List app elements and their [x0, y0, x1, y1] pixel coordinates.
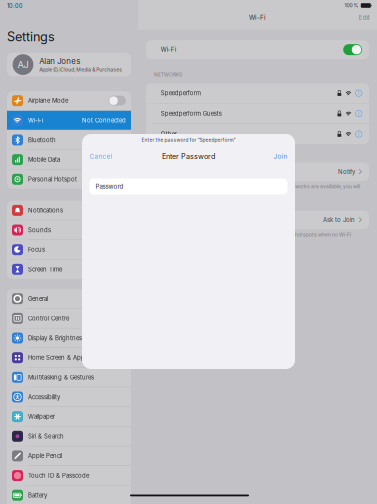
button[interactable]: Accessibility — [7, 387, 131, 406]
staticText: Mobile Data — [28, 156, 60, 163]
staticText: Multitasking & Gestures — [28, 374, 94, 381]
staticText: Known networks will be joined automatica… — [154, 184, 360, 195]
button[interactable]: Sounds — [7, 220, 131, 240]
staticText: Control Centre — [28, 315, 69, 322]
button[interactable]: Touch ID & Passcode — [7, 466, 131, 485]
staticText: Wi-Fi — [28, 117, 43, 124]
staticText: Password — [95, 183, 123, 190]
staticText: Display & Brightness — [28, 334, 85, 342]
button[interactable]: Multitasking & Gestures — [7, 368, 131, 387]
staticText: Airplane Mode — [28, 97, 68, 104]
button[interactable]: Speedperform Guests — [146, 104, 369, 123]
staticText: General — [28, 295, 48, 302]
staticText: Settings — [7, 29, 55, 44]
staticText: Edit — [359, 14, 370, 21]
button[interactable]: Ask to Join Networks — [146, 162, 369, 181]
staticText: Wallpaper — [28, 413, 55, 420]
staticText: Allow this device to automatically disco… — [154, 232, 351, 243]
staticText: Not Connected — [82, 117, 126, 124]
staticText: Speedperform — [161, 89, 201, 97]
staticText: Ask to Join — [323, 216, 355, 223]
button[interactable]: Display & Brightness — [7, 328, 131, 348]
button[interactable]: Siri & Search — [7, 427, 131, 446]
staticText: Wi-Fi — [249, 14, 266, 21]
staticText: Screen Time — [28, 266, 62, 273]
staticText: Wi-Fi — [161, 46, 176, 53]
button[interactable]: Wi-Fi — [7, 111, 131, 130]
button[interactable]: Wallpaper — [7, 407, 131, 426]
button[interactable]: Focus — [7, 240, 131, 259]
button[interactable]: Apple Pencil — [7, 446, 131, 465]
button[interactable]: Other — [146, 124, 369, 144]
button[interactable]: Mobile Data — [7, 150, 131, 169]
staticText: Notifications — [28, 207, 63, 214]
button[interactable]: Control Centre — [7, 309, 131, 328]
staticText: Speedperform Guests — [161, 110, 222, 117]
staticText: 100 % — [345, 2, 359, 8]
staticText: Personal Hotspot — [28, 176, 77, 183]
button[interactable]: Bluetooth — [7, 130, 131, 149]
staticText: Alan Jones — [39, 56, 80, 66]
button[interactable]: Airplane Mode — [7, 91, 131, 110]
staticText: Accessibility — [28, 393, 60, 401]
staticText: Notify — [338, 168, 355, 175]
button[interactable]: Edit — [359, 14, 370, 21]
staticText: i — [358, 110, 359, 117]
staticText: Siri & Search — [28, 433, 64, 440]
staticText: Apple ID, iCloud, Media & Purchases — [39, 67, 122, 73]
staticText: Join — [273, 153, 287, 160]
button[interactable]: Wi-Fi — [343, 44, 362, 55]
staticText: Bluetooth — [28, 136, 56, 144]
button[interactable]: Auto-Join Hotspot — [146, 210, 369, 229]
staticText: Battery — [28, 492, 47, 499]
button[interactable]: Screen Time — [7, 260, 131, 279]
button[interactable]: Speedperform — [146, 83, 369, 103]
staticText: Home Screen & App Library — [28, 354, 105, 361]
staticText: AJ — [17, 59, 28, 70]
staticText: Touch ID & Passcode — [28, 472, 89, 479]
button[interactable]: Personal Hotspot — [7, 170, 131, 189]
staticText: 10:00 — [7, 3, 23, 9]
button[interactable]: AJ — [7, 53, 131, 76]
button[interactable]: Battery — [7, 486, 131, 504]
staticText: i — [358, 131, 359, 137]
button[interactable]: Home Screen & App Library — [7, 348, 131, 367]
staticText: Other — [161, 130, 177, 138]
staticText: NETWORKS — [154, 72, 182, 78]
button[interactable]: Join — [273, 153, 287, 160]
staticText: Apple Pencil — [28, 452, 62, 460]
staticText: i — [358, 90, 359, 96]
button[interactable]: Cancel — [89, 153, 112, 160]
staticText: Cancel — [89, 153, 112, 160]
staticText: Enter Password — [162, 152, 215, 161]
button[interactable]: Notifications — [7, 201, 131, 220]
button[interactable]: General — [7, 289, 131, 308]
staticText: Focus — [28, 246, 45, 253]
staticText: Sounds — [28, 226, 51, 234]
staticText: Enter the password for “Speedperform” — [141, 137, 235, 143]
